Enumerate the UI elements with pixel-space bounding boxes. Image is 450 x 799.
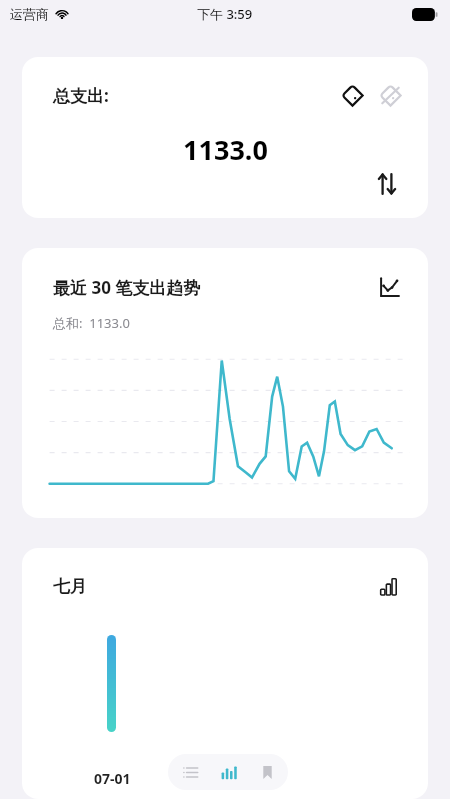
staticText: 总支出: <box>53 84 109 107</box>
staticText: 下午 3:59 <box>197 5 253 23</box>
button[interactable]: 列表 <box>173 755 207 789</box>
button[interactable]: 七月 <box>22 548 428 799</box>
staticText: 07-01 <box>94 769 131 788</box>
staticText: 运营商 <box>10 6 49 22</box>
staticText: 七月 <box>53 576 87 597</box>
staticText: 1133.0 <box>183 131 268 168</box>
button[interactable]: 柱状图 <box>372 570 406 604</box>
button[interactable]: 折线图 <box>372 270 406 304</box>
button[interactable]: 总支出: <box>22 57 428 218</box>
button[interactable]: 统计 <box>211 755 245 789</box>
button[interactable]: 标签 <box>336 79 368 111</box>
button[interactable]: 书签 <box>250 755 284 789</box>
staticText: 总和: 1133.0 <box>53 314 130 332</box>
button[interactable]: 排序 <box>370 167 404 201</box>
staticText: 最近 30 笔支出趋势 <box>53 276 201 299</box>
button[interactable]: 最近 30 笔支出趋势 <box>22 248 428 518</box>
button[interactable]: 取消标签 <box>374 79 406 111</box>
